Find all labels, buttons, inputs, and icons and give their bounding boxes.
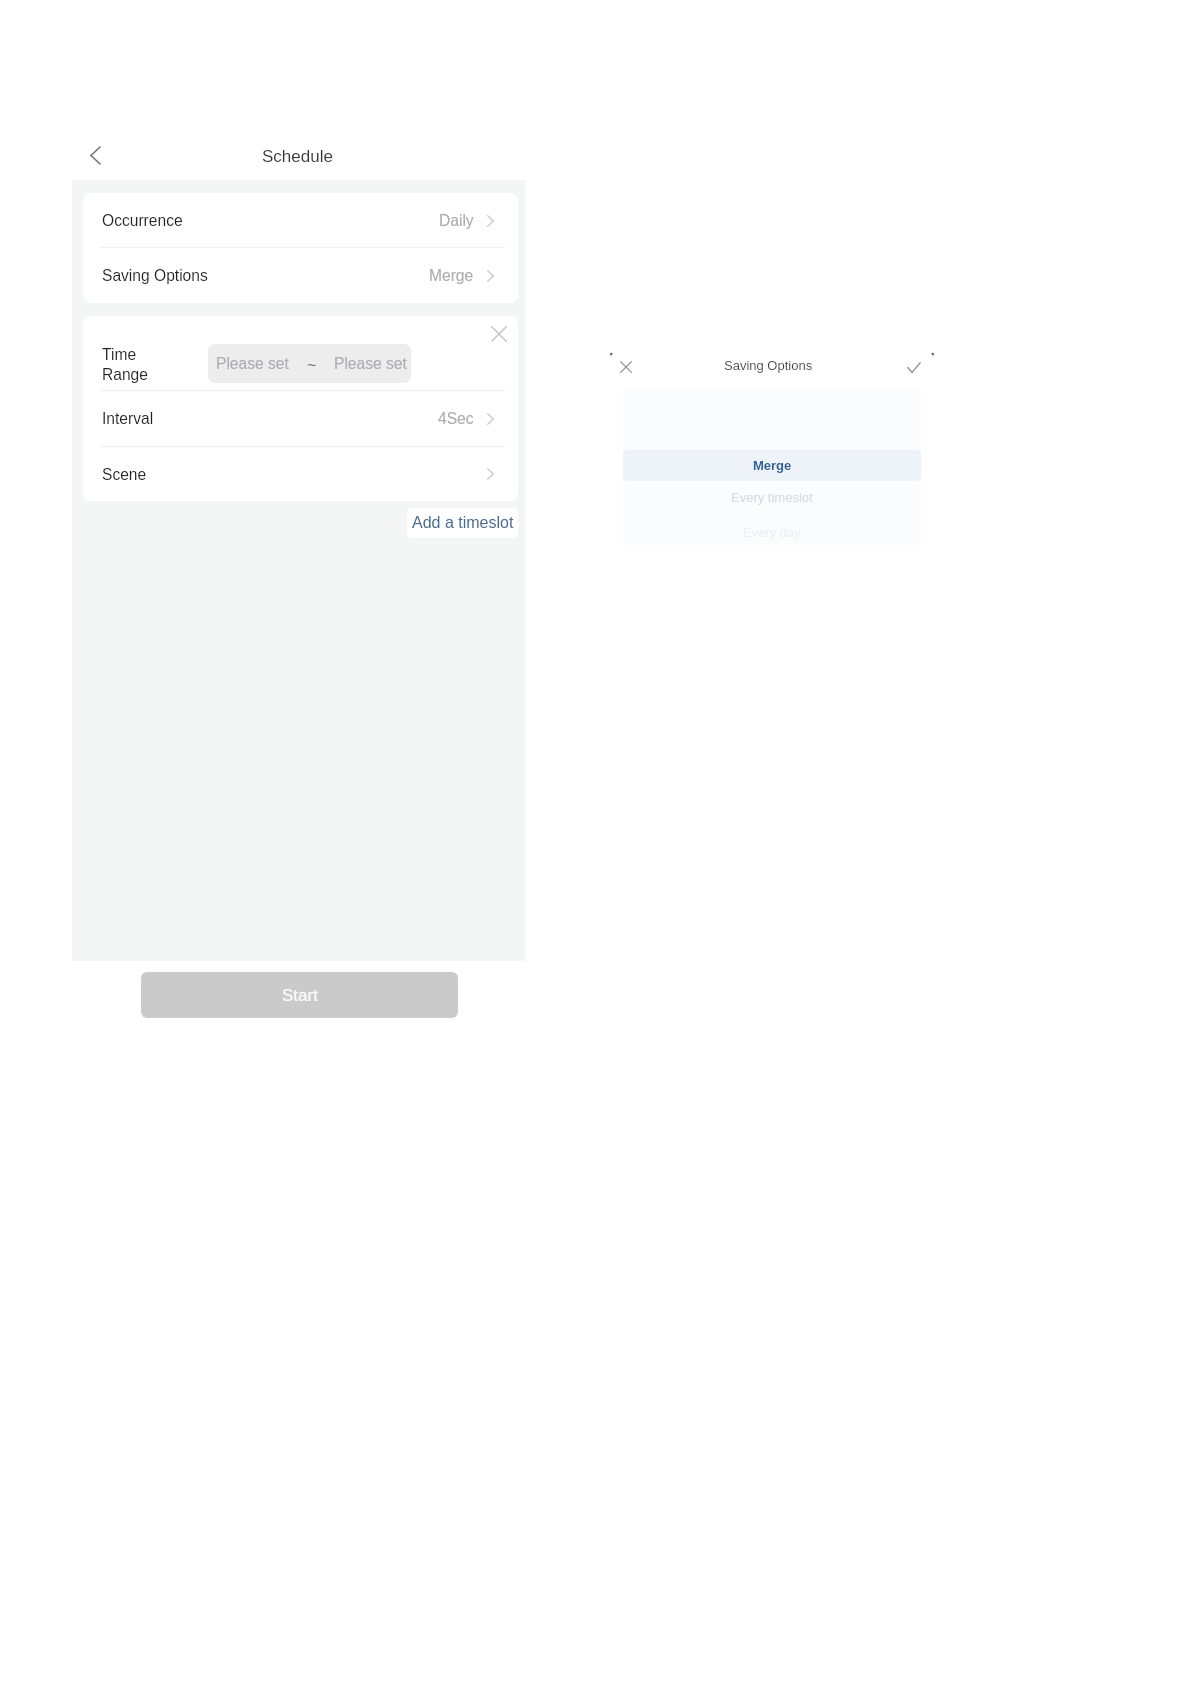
staticText: Every day [743, 525, 801, 540]
staticText: Merge [753, 458, 792, 473]
staticText: Please set [216, 355, 289, 372]
button[interactable]: Confirm [901, 354, 927, 380]
button[interactable]: Start [141, 972, 458, 1018]
button[interactable]: Saving Options [83, 248, 518, 303]
staticText: Merge [429, 267, 474, 284]
button[interactable]: Add a timeslot [407, 508, 518, 538]
staticText: Saving Options [102, 267, 208, 284]
staticText: Please set [334, 355, 407, 372]
staticText: Schedule [262, 147, 333, 166]
button[interactable]: Close [613, 354, 639, 380]
button[interactable]: Remove timeslot [483, 318, 515, 350]
button[interactable]: Scene [83, 447, 518, 501]
staticText: 4Sec [438, 410, 474, 427]
staticText: Daily [439, 212, 474, 229]
staticText: Interval [102, 410, 154, 427]
staticText: Add a timeslot [412, 514, 514, 532]
staticText: Time [102, 346, 137, 363]
staticText: Scene [102, 466, 147, 483]
button[interactable]: Every timeslot [623, 481, 921, 514]
button[interactable]: Please set [208, 344, 411, 383]
staticText: Range [102, 366, 148, 383]
staticText: Every timeslot [731, 490, 813, 505]
staticText: Occurrence [102, 212, 183, 229]
button[interactable]: Occurrence [83, 193, 518, 248]
button[interactable]: Back [73, 133, 117, 177]
staticText: Start [282, 986, 318, 1005]
staticText: Saving Options [724, 358, 813, 373]
staticText: ~ [307, 357, 317, 375]
button[interactable]: Time [83, 316, 518, 390]
button[interactable]: Interval [83, 391, 518, 446]
button[interactable]: Merge [623, 450, 921, 481]
